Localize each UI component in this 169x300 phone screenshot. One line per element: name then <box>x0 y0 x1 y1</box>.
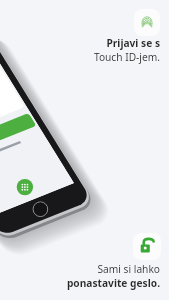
staticText: Sami si lahko <box>97 262 160 276</box>
button[interactable]: Reset password <box>133 233 161 260</box>
staticText: Prijavi se s <box>106 36 160 50</box>
staticText: Touch ID-jem. <box>93 50 160 64</box>
staticText: ponastavite geslo. <box>66 276 160 290</box>
button[interactable]: Touch ID <box>134 9 160 36</box>
